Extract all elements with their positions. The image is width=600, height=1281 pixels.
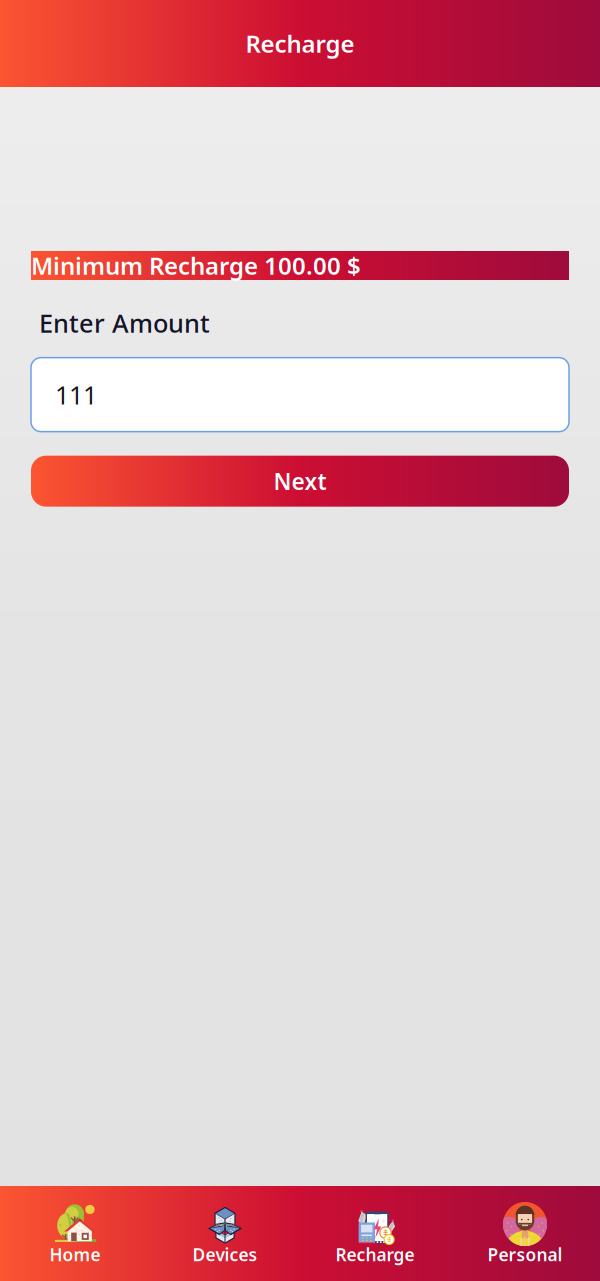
staticText: Recharge [335,1243,414,1266]
button[interactable]: Home [0,1186,150,1281]
button[interactable]: Next [31,456,569,507]
staticText: Devices [192,1243,257,1266]
staticText: Recharge [245,28,354,59]
staticText: 111 [55,378,97,411]
staticText: Next [273,466,326,496]
staticText: Minimum Recharge 100.00 $ [31,250,361,281]
staticText: Enter Amount [39,306,210,340]
button[interactable]: Devices [150,1186,300,1281]
staticText: Home [49,1243,100,1266]
button[interactable]: Personal [450,1186,600,1281]
staticText: Personal [487,1243,562,1266]
button[interactable]: Recharge [300,1186,450,1281]
